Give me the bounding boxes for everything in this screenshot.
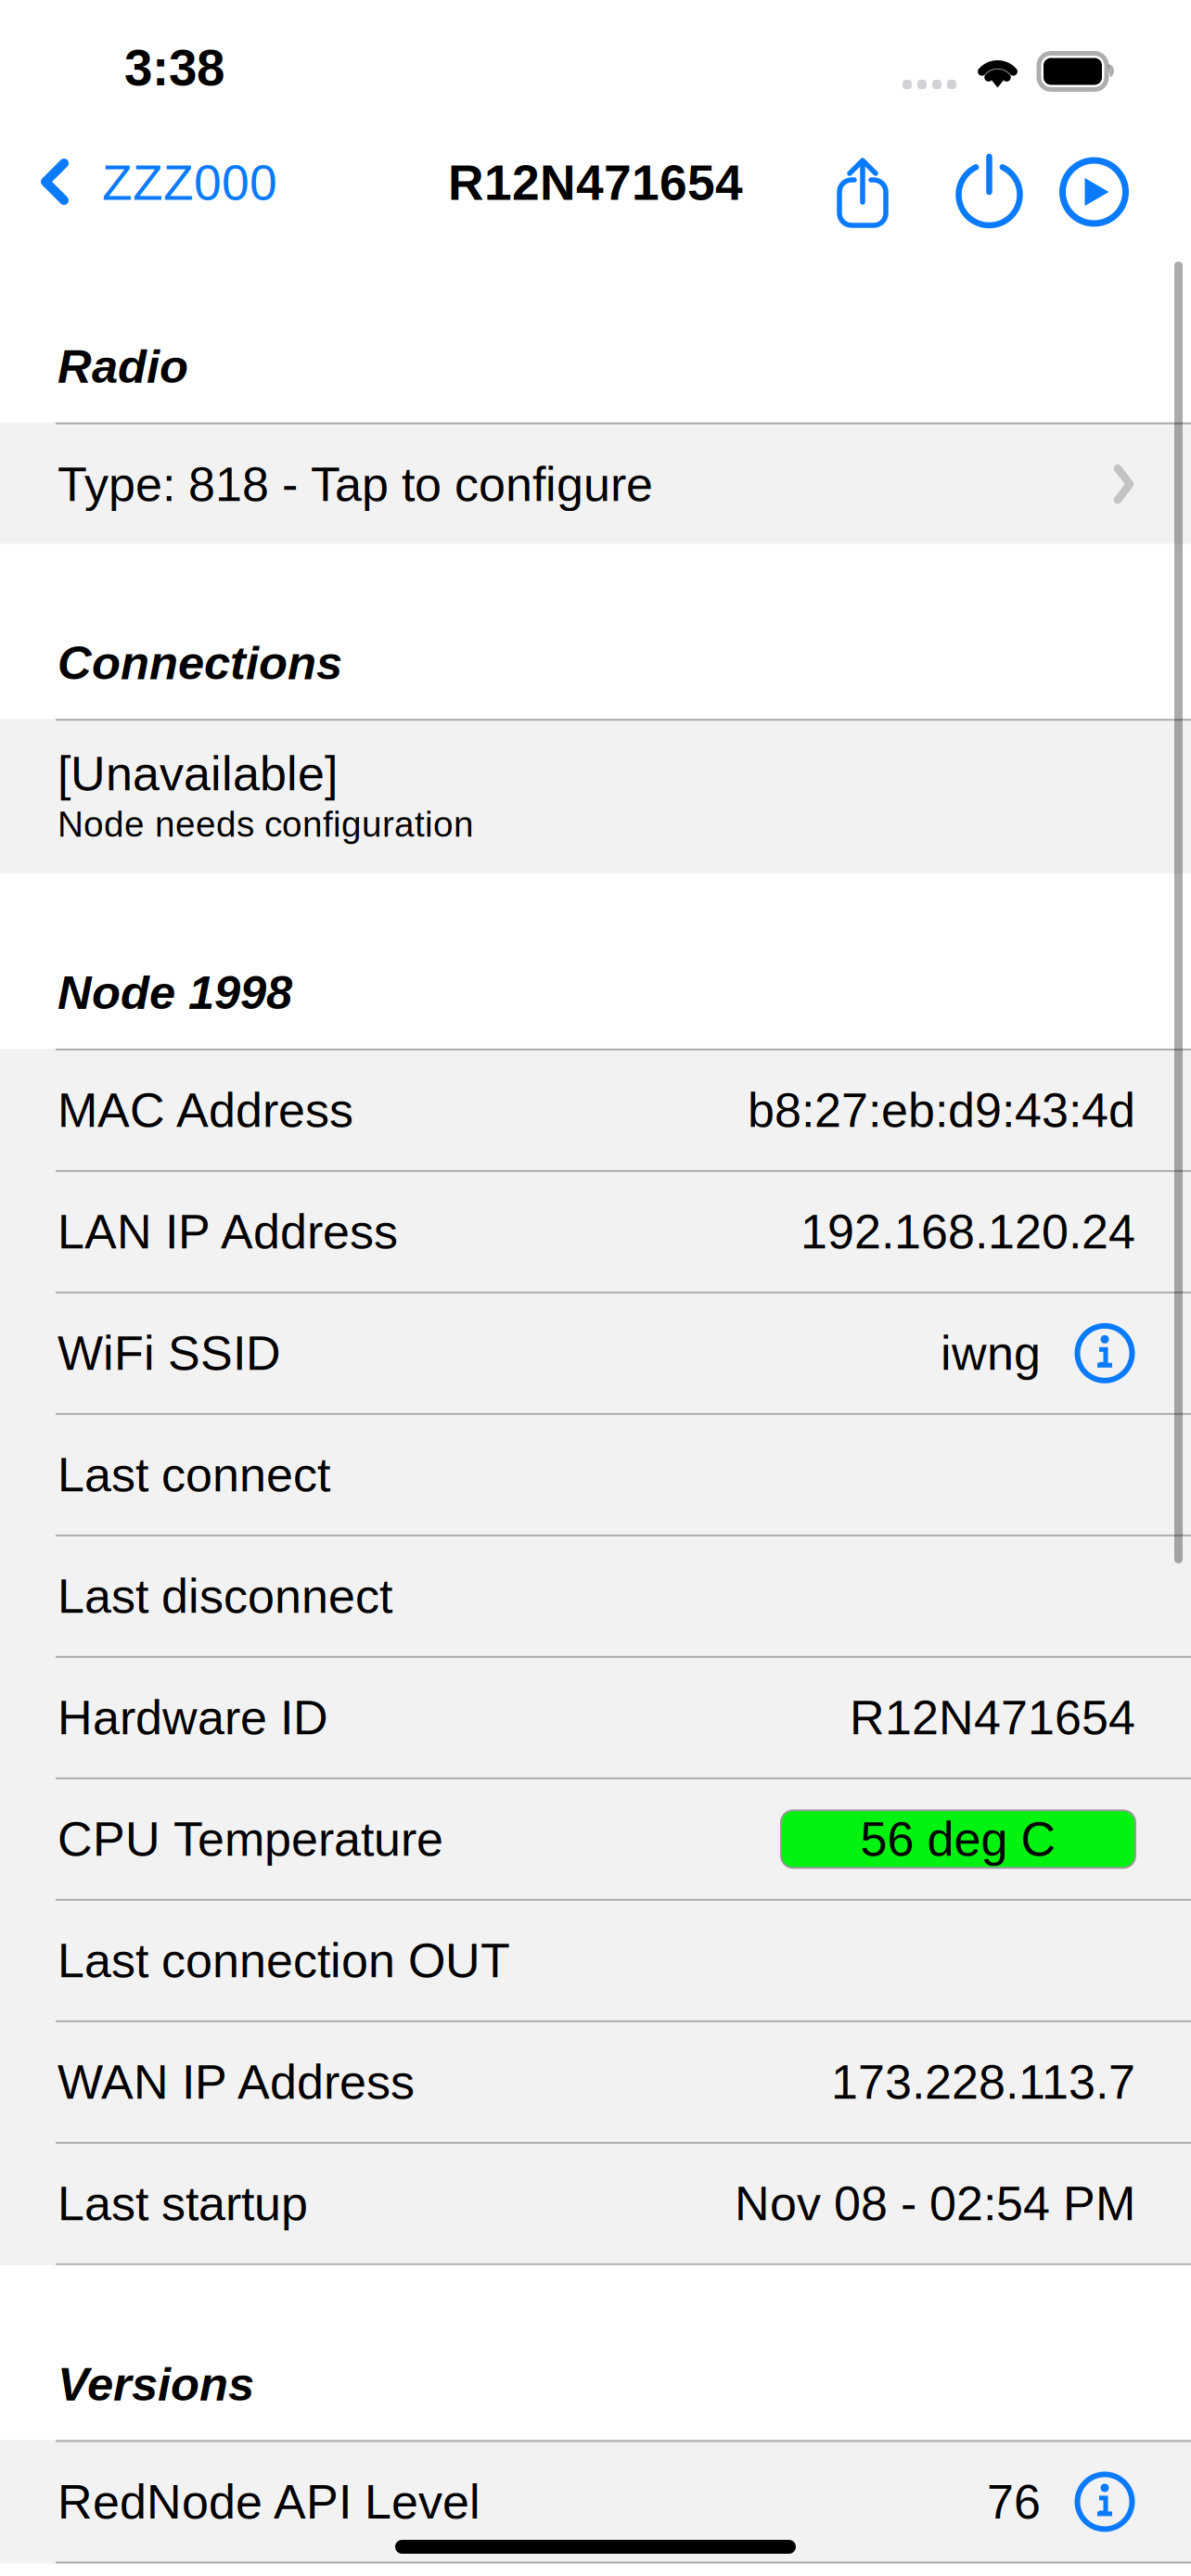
button[interactable]: Run bbox=[1045, 124, 1143, 241]
staticText: Connections bbox=[58, 637, 342, 689]
staticText: ZZZ000 bbox=[102, 155, 277, 210]
staticText: R12N471654 bbox=[850, 1691, 1135, 1745]
button[interactable]: Power bbox=[941, 124, 1038, 241]
staticText: Radio bbox=[58, 340, 188, 393]
staticText: Last connection OUT bbox=[58, 1934, 510, 1988]
staticText: Last disconnect bbox=[58, 1569, 392, 1623]
staticText: 76 bbox=[987, 2475, 1041, 2529]
staticText: WiFi SSID bbox=[58, 1326, 281, 1380]
staticText: Type: 818 - Tap to configure bbox=[58, 457, 653, 511]
staticText: iwng bbox=[941, 1326, 1041, 1380]
staticText: CPU Temperature bbox=[58, 1812, 443, 1866]
staticText: Node needs configuration bbox=[58, 804, 474, 844]
button[interactable]: Type: 818 - Tap to configure bbox=[0, 422, 1191, 544]
staticText: 192.168.120.24 bbox=[800, 1205, 1135, 1259]
staticText: b8:27:eb:d9:43:4d bbox=[748, 1083, 1135, 1137]
staticText: Last connect bbox=[58, 1448, 330, 1502]
staticText: Nov 08 - 02:54 PM bbox=[735, 2177, 1135, 2230]
staticText: 3:38 bbox=[124, 39, 224, 96]
staticText: R12N471654 bbox=[448, 155, 743, 210]
staticText: WAN IP Address bbox=[58, 2055, 415, 2109]
staticText: Versions bbox=[58, 2358, 254, 2410]
staticText: RedNode API Level bbox=[58, 2475, 480, 2529]
staticText: Node 1998 bbox=[58, 966, 292, 1019]
staticText: Hardware ID bbox=[58, 1691, 328, 1745]
staticText: 56 deg C bbox=[860, 1812, 1056, 1866]
staticText: MAC Address bbox=[58, 1083, 353, 1137]
staticText: 173.228.113.7 bbox=[831, 2055, 1135, 2109]
staticText: [Unavailable] bbox=[58, 747, 338, 801]
staticText: LAN IP Address bbox=[58, 1205, 398, 1259]
button[interactable]: ZZZ000 bbox=[0, 124, 296, 241]
staticText: Last startup bbox=[58, 2177, 308, 2230]
button[interactable]: Share bbox=[813, 124, 913, 241]
